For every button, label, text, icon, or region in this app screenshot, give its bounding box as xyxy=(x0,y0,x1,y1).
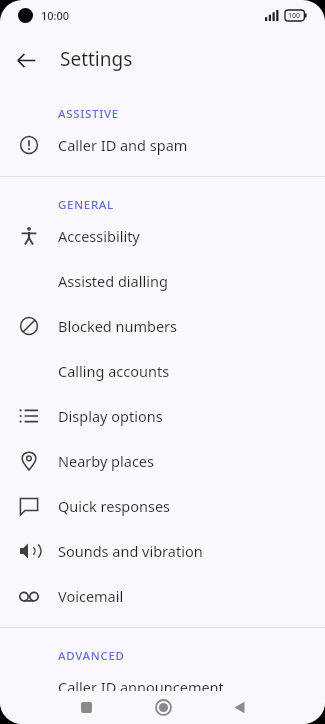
staticText: Calling accounts xyxy=(58,361,170,381)
staticText: Accessibility xyxy=(58,226,140,246)
button[interactable]: Sounds and vibration xyxy=(0,528,325,573)
staticText: Nearby places xyxy=(58,451,154,471)
button[interactable]: Assisted dialling xyxy=(0,258,325,303)
staticText: Display options xyxy=(58,406,163,426)
staticText: 100 xyxy=(288,11,301,21)
button[interactable]: Back xyxy=(6,40,46,80)
button[interactable]: Recent apps xyxy=(69,691,103,724)
button[interactable]: Display options xyxy=(0,393,325,438)
staticText: Settings xyxy=(60,46,133,72)
staticText: 10:00 xyxy=(41,8,70,23)
button[interactable]: Caller ID and spam xyxy=(0,122,325,167)
staticText: Sounds and vibration xyxy=(58,541,203,561)
button[interactable]: Accessibility xyxy=(0,213,325,258)
staticText: Quick responses xyxy=(58,496,171,516)
button[interactable]: Home xyxy=(146,691,180,724)
staticText: ADVANCED xyxy=(58,648,125,664)
button[interactable]: Quick responses xyxy=(0,483,325,528)
staticText: Caller ID and spam xyxy=(58,135,188,155)
button[interactable]: Blocked numbers xyxy=(0,303,325,348)
staticText: ASSISTIVE xyxy=(58,106,119,122)
staticText: Caller ID announcement xyxy=(58,677,224,697)
staticText: GENERAL xyxy=(58,197,114,213)
staticText: Assisted dialling xyxy=(58,271,168,291)
button[interactable]: Nearby places xyxy=(0,438,325,483)
button[interactable]: Calling accounts xyxy=(0,348,325,393)
staticText: Blocked numbers xyxy=(58,316,178,336)
button[interactable]: Back xyxy=(222,691,256,724)
button[interactable]: Voicemail xyxy=(0,573,325,618)
button[interactable]: Caller ID announcement xyxy=(0,664,325,709)
staticText: Voicemail xyxy=(58,586,124,606)
